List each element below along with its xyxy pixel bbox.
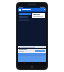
button[interactable] [35, 50, 45, 52]
button[interactable] [18, 49, 46, 52]
button[interactable] [32, 13, 45, 18]
button[interactable]: Menu [19, 9, 21, 11]
button[interactable]: Menu [18, 8, 46, 11]
button[interactable] [19, 13, 31, 15]
button[interactable] [18, 46, 46, 48]
